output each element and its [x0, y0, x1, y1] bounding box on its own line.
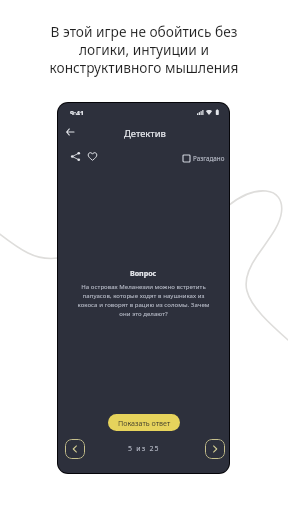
button[interactable]: Назад	[62, 124, 78, 140]
staticText: На островах Меланезии можно встретить па…	[74, 283, 213, 318]
button[interactable]: Разгадано	[180, 151, 228, 166]
button[interactable]: В избранное	[84, 148, 100, 164]
button[interactable]: Предыдущий вопрос	[65, 439, 85, 459]
button[interactable]: Поделиться	[67, 148, 83, 164]
staticText: В этой игре не обойтись без логики, инту…	[44, 22, 244, 77]
staticText: Вопрос	[130, 268, 157, 278]
staticText: 5 из 25	[128, 444, 160, 454]
staticText: Детектив	[124, 127, 166, 140]
staticText: 9:41	[70, 109, 84, 115]
staticText: Разгадано	[193, 154, 225, 163]
staticText: Показать ответ	[118, 418, 171, 428]
button[interactable]: Следующий вопрос	[205, 439, 225, 459]
button[interactable]: Показать ответ	[108, 414, 180, 431]
